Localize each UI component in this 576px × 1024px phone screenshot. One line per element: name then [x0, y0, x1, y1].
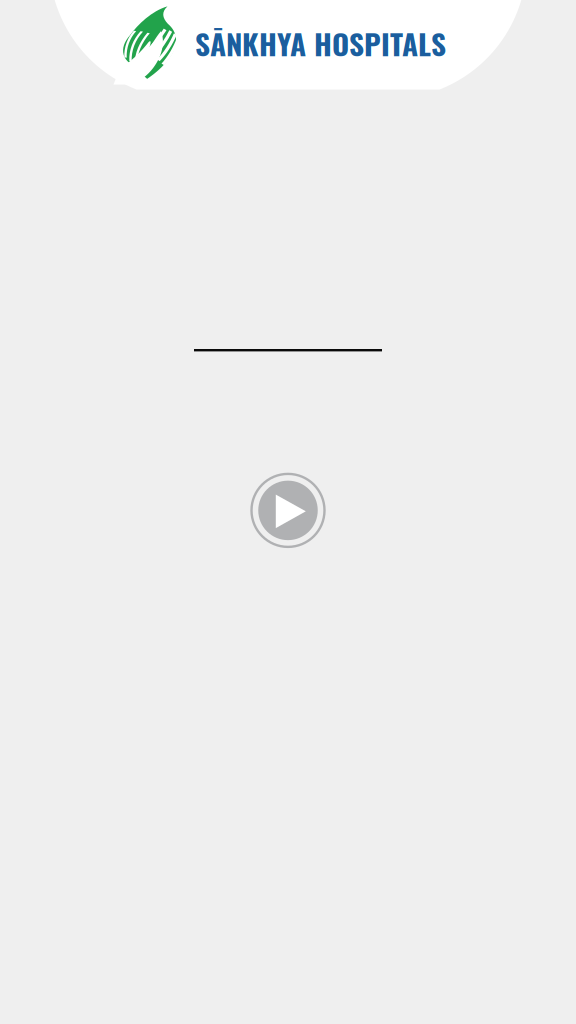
button[interactable]: Play	[248, 470, 328, 550]
staticText: SĀNKHYA HOSPITALS	[195, 21, 446, 65]
